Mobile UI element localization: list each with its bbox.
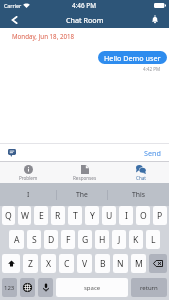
button[interactable]: return bbox=[131, 278, 167, 297]
button[interactable]: Z bbox=[23, 254, 38, 273]
button[interactable]: Q bbox=[2, 206, 15, 225]
staticText: V bbox=[82, 258, 88, 270]
staticText: P bbox=[157, 210, 163, 222]
staticText: Q bbox=[5, 210, 12, 222]
button[interactable]: P bbox=[153, 206, 167, 225]
button[interactable]: C bbox=[59, 254, 74, 273]
button[interactable]: K bbox=[129, 230, 143, 249]
button[interactable]: U bbox=[102, 206, 116, 225]
button[interactable]: Back bbox=[0, 11, 28, 28]
staticText: O bbox=[140, 210, 147, 222]
staticText: D bbox=[48, 234, 55, 246]
button[interactable]: Change keyboard bbox=[20, 278, 35, 297]
button[interactable]: Chat bbox=[113, 162, 169, 183]
button[interactable]: T bbox=[68, 206, 82, 225]
staticText: U bbox=[106, 210, 113, 222]
staticText: N bbox=[117, 258, 124, 270]
staticText: Problem bbox=[19, 175, 38, 181]
staticText: 123 bbox=[4, 284, 15, 292]
button[interactable]: G bbox=[78, 230, 92, 249]
staticText: 4:46 PM bbox=[72, 1, 97, 10]
button[interactable]: I bbox=[0, 183, 56, 206]
staticText: A bbox=[14, 234, 20, 246]
button[interactable]: H bbox=[95, 230, 109, 249]
button[interactable]: I bbox=[119, 206, 133, 225]
staticText: F bbox=[66, 234, 71, 246]
button[interactable]: M bbox=[131, 254, 146, 273]
staticText: R bbox=[55, 210, 61, 222]
staticText: E bbox=[39, 210, 44, 222]
staticText: Z bbox=[28, 258, 33, 270]
staticText: Monday, Jun 18, 2018 bbox=[12, 32, 75, 40]
button[interactable]: Responses bbox=[57, 162, 113, 183]
button[interactable]: F bbox=[61, 230, 75, 249]
button[interactable]: R bbox=[51, 206, 65, 225]
staticText: C bbox=[64, 258, 70, 270]
staticText: X bbox=[46, 258, 52, 270]
button[interactable]: L bbox=[146, 230, 160, 249]
button[interactable]: Hello Demo user bbox=[98, 51, 167, 64]
staticText: I bbox=[27, 190, 30, 199]
staticText: M bbox=[135, 258, 143, 270]
button[interactable]: E bbox=[34, 206, 48, 225]
staticText: The bbox=[76, 190, 88, 199]
button[interactable]: 123 bbox=[2, 278, 17, 297]
staticText: L bbox=[151, 234, 156, 246]
button[interactable]: The bbox=[57, 183, 107, 206]
staticText: Send bbox=[144, 148, 161, 158]
staticText: K bbox=[133, 234, 139, 246]
staticText: Chat Room bbox=[66, 15, 104, 25]
button[interactable]: W bbox=[18, 206, 31, 225]
button[interactable]: X bbox=[41, 254, 56, 273]
staticText: Responses bbox=[73, 175, 97, 181]
button[interactable]: Backspace bbox=[149, 254, 167, 273]
staticText: B bbox=[100, 258, 106, 270]
button[interactable]: Dictate bbox=[38, 278, 53, 297]
staticText: This bbox=[132, 190, 145, 199]
button[interactable]: N bbox=[113, 254, 128, 273]
button[interactable]: Notifications bbox=[141, 11, 169, 28]
staticText: space bbox=[84, 284, 101, 292]
button[interactable]: Attach message bbox=[0, 144, 24, 161]
staticText: I bbox=[125, 210, 128, 222]
staticText: S bbox=[32, 234, 37, 246]
staticText: H bbox=[99, 234, 106, 246]
button[interactable]: Shift bbox=[2, 254, 20, 273]
staticText: Chat bbox=[136, 175, 146, 181]
button[interactable]: D bbox=[44, 230, 58, 249]
staticText: T bbox=[73, 210, 78, 222]
staticText: Carrier bbox=[4, 2, 22, 9]
button[interactable]: space bbox=[56, 278, 128, 297]
staticText: W bbox=[21, 210, 29, 222]
staticText: G bbox=[82, 234, 89, 246]
button[interactable]: A bbox=[9, 230, 24, 249]
staticText: J bbox=[118, 234, 121, 246]
staticText: Hello Demo user bbox=[104, 53, 161, 63]
button[interactable]: V bbox=[77, 254, 92, 273]
button[interactable]: S bbox=[27, 230, 41, 249]
button[interactable]: This bbox=[108, 183, 169, 206]
button[interactable]: Send bbox=[144, 144, 161, 161]
button[interactable]: B bbox=[95, 254, 110, 273]
staticText: Y bbox=[90, 210, 95, 222]
staticText: 4:42 PM bbox=[143, 66, 161, 72]
button[interactable]: O bbox=[136, 206, 150, 225]
button[interactable]: J bbox=[112, 230, 126, 249]
button[interactable]: Y bbox=[85, 206, 99, 225]
staticText: return bbox=[140, 284, 158, 292]
button[interactable]: Problem bbox=[0, 162, 57, 183]
